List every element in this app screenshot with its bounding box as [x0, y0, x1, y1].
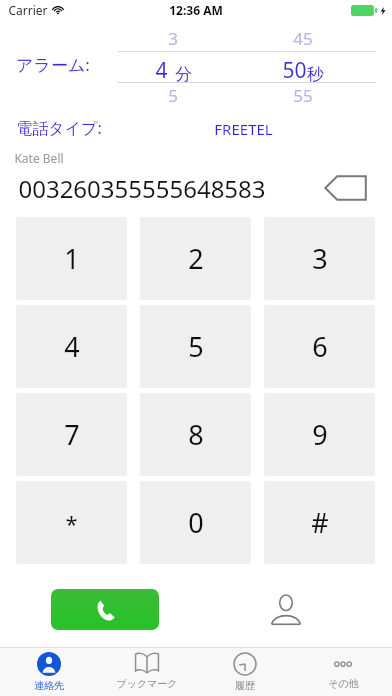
staticText: 履歴: [235, 679, 255, 692]
button[interactable]: 8: [140, 393, 251, 476]
button[interactable]: Contacts: [262, 589, 310, 631]
staticText: 9: [312, 416, 328, 453]
button[interactable]: 0: [140, 481, 251, 564]
button[interactable]: 3: [264, 217, 375, 300]
staticText: 55: [293, 84, 313, 107]
button[interactable]: 4: [16, 305, 127, 388]
staticText: その他: [328, 677, 359, 690]
staticText: 8: [188, 416, 204, 453]
staticText: 電話タイプ:: [16, 117, 102, 139]
staticText: ブックマーク: [116, 677, 178, 690]
button[interactable]: ブックマーク: [98, 647, 196, 696]
button[interactable]: 7: [16, 393, 127, 476]
button[interactable]: 9: [264, 393, 375, 476]
button[interactable]: FREETEL: [214, 119, 273, 139]
button[interactable]: 2: [140, 217, 251, 300]
button[interactable]: 4: [118, 56, 228, 85]
staticText: 4: [155, 56, 168, 85]
staticText: 連絡先: [34, 679, 64, 692]
button[interactable]: 5: [140, 305, 251, 388]
button[interactable]: 1: [16, 217, 127, 300]
button[interactable]: 6: [264, 305, 375, 388]
staticText: 5: [188, 328, 204, 365]
staticText: 003260355555648583: [18, 172, 266, 205]
staticText: 5: [168, 84, 178, 107]
staticText: 0: [188, 504, 204, 541]
staticText: 6: [312, 328, 328, 365]
button[interactable]: 50: [248, 56, 358, 85]
button[interactable]: *: [16, 481, 127, 564]
staticText: 秒: [307, 64, 324, 85]
staticText: 3: [312, 240, 328, 277]
staticText: *: [65, 508, 78, 538]
staticText: 2: [188, 240, 204, 277]
button[interactable]: その他: [294, 647, 392, 696]
staticText: 分: [175, 64, 192, 85]
staticText: 3: [168, 27, 178, 50]
button[interactable]: 連絡先: [0, 647, 98, 696]
button[interactable]: 履歴: [196, 647, 294, 696]
button[interactable]: Delete: [322, 172, 370, 204]
staticText: 7: [64, 416, 80, 453]
staticText: 12:36 AM: [169, 2, 223, 18]
staticText: 4: [64, 328, 80, 365]
staticText: 1: [64, 240, 80, 277]
button[interactable]: #: [264, 481, 375, 564]
staticText: FREETEL: [214, 119, 273, 139]
staticText: アラーム:: [16, 53, 90, 76]
staticText: 45: [293, 27, 313, 50]
staticText: Carrier: [8, 2, 48, 18]
button[interactable]: Call: [51, 589, 159, 630]
staticText: Kate Bell: [14, 150, 64, 166]
staticText: #: [311, 504, 329, 541]
staticText: 50: [282, 56, 307, 85]
